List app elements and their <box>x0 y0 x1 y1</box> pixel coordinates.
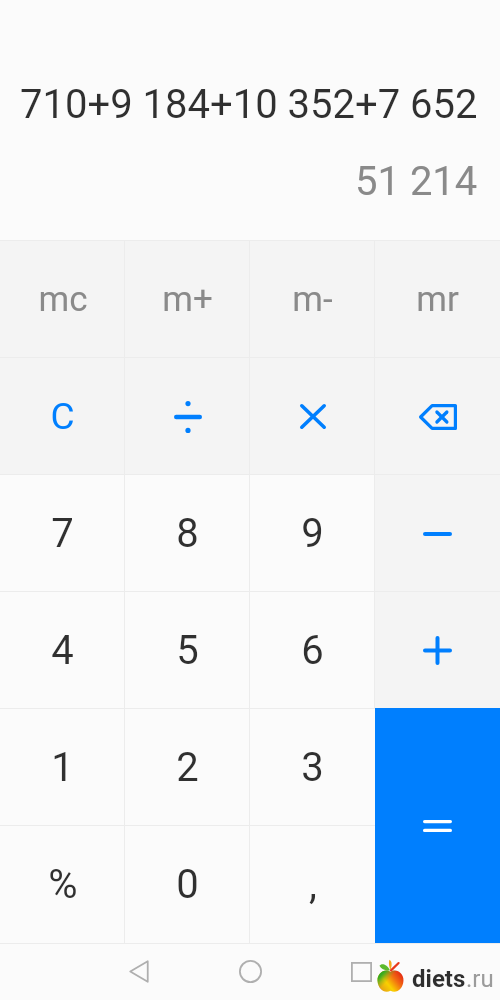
button[interactable]: , <box>250 826 375 943</box>
button[interactable]: 5 <box>125 592 250 709</box>
staticText: % <box>48 861 78 908</box>
button[interactable]: Recents <box>337 943 386 1000</box>
button[interactable]: 7 <box>0 475 125 592</box>
button[interactable]: Minus <box>375 475 500 592</box>
button[interactable]: m+ <box>125 240 250 358</box>
staticText: 4 <box>51 627 74 674</box>
staticText: 1 <box>51 744 74 791</box>
button[interactable]: Equals <box>375 708 500 943</box>
staticText: m+ <box>162 279 213 320</box>
button[interactable]: 6 <box>250 592 375 709</box>
button[interactable]: 4 <box>0 592 125 709</box>
button[interactable]: 2 <box>125 709 250 826</box>
button[interactable]: Home <box>226 943 275 1000</box>
button[interactable]: Back <box>114 943 163 1000</box>
button[interactable]: Multiply <box>250 358 375 475</box>
button[interactable]: 1 <box>0 709 125 826</box>
button[interactable]: mc <box>0 240 125 358</box>
button[interactable]: m- <box>250 240 375 358</box>
staticText: mc <box>38 279 88 320</box>
button[interactable]: mr <box>375 240 500 358</box>
staticText: , <box>309 861 317 908</box>
staticText: 5 <box>176 627 199 674</box>
staticText: C <box>50 395 75 438</box>
staticText: 9 <box>301 510 324 557</box>
button[interactable]: 9 <box>250 475 375 592</box>
button[interactable]: Divide <box>125 358 250 475</box>
button[interactable]: 8 <box>125 475 250 592</box>
button[interactable]: Backspace <box>375 358 500 475</box>
button[interactable]: Plus <box>375 592 500 709</box>
staticText: 8 <box>176 510 199 557</box>
staticText: 0 <box>176 861 199 908</box>
staticText: 7 <box>51 510 74 557</box>
button[interactable]: % <box>0 826 125 943</box>
button[interactable]: C <box>0 358 125 475</box>
button[interactable]: 3 <box>250 709 375 826</box>
staticText: 2 <box>176 744 199 791</box>
staticText: 51 214 <box>355 158 478 205</box>
staticText: .ru <box>466 965 494 993</box>
staticText: mr <box>416 279 459 320</box>
button[interactable]: 0 <box>125 826 250 943</box>
staticText: 710+9 184+10 352+7 652 <box>20 81 478 128</box>
staticText: 6 <box>301 627 324 674</box>
staticText: 3 <box>301 744 324 791</box>
staticText: diets <box>412 965 466 993</box>
staticText: m- <box>292 279 333 320</box>
